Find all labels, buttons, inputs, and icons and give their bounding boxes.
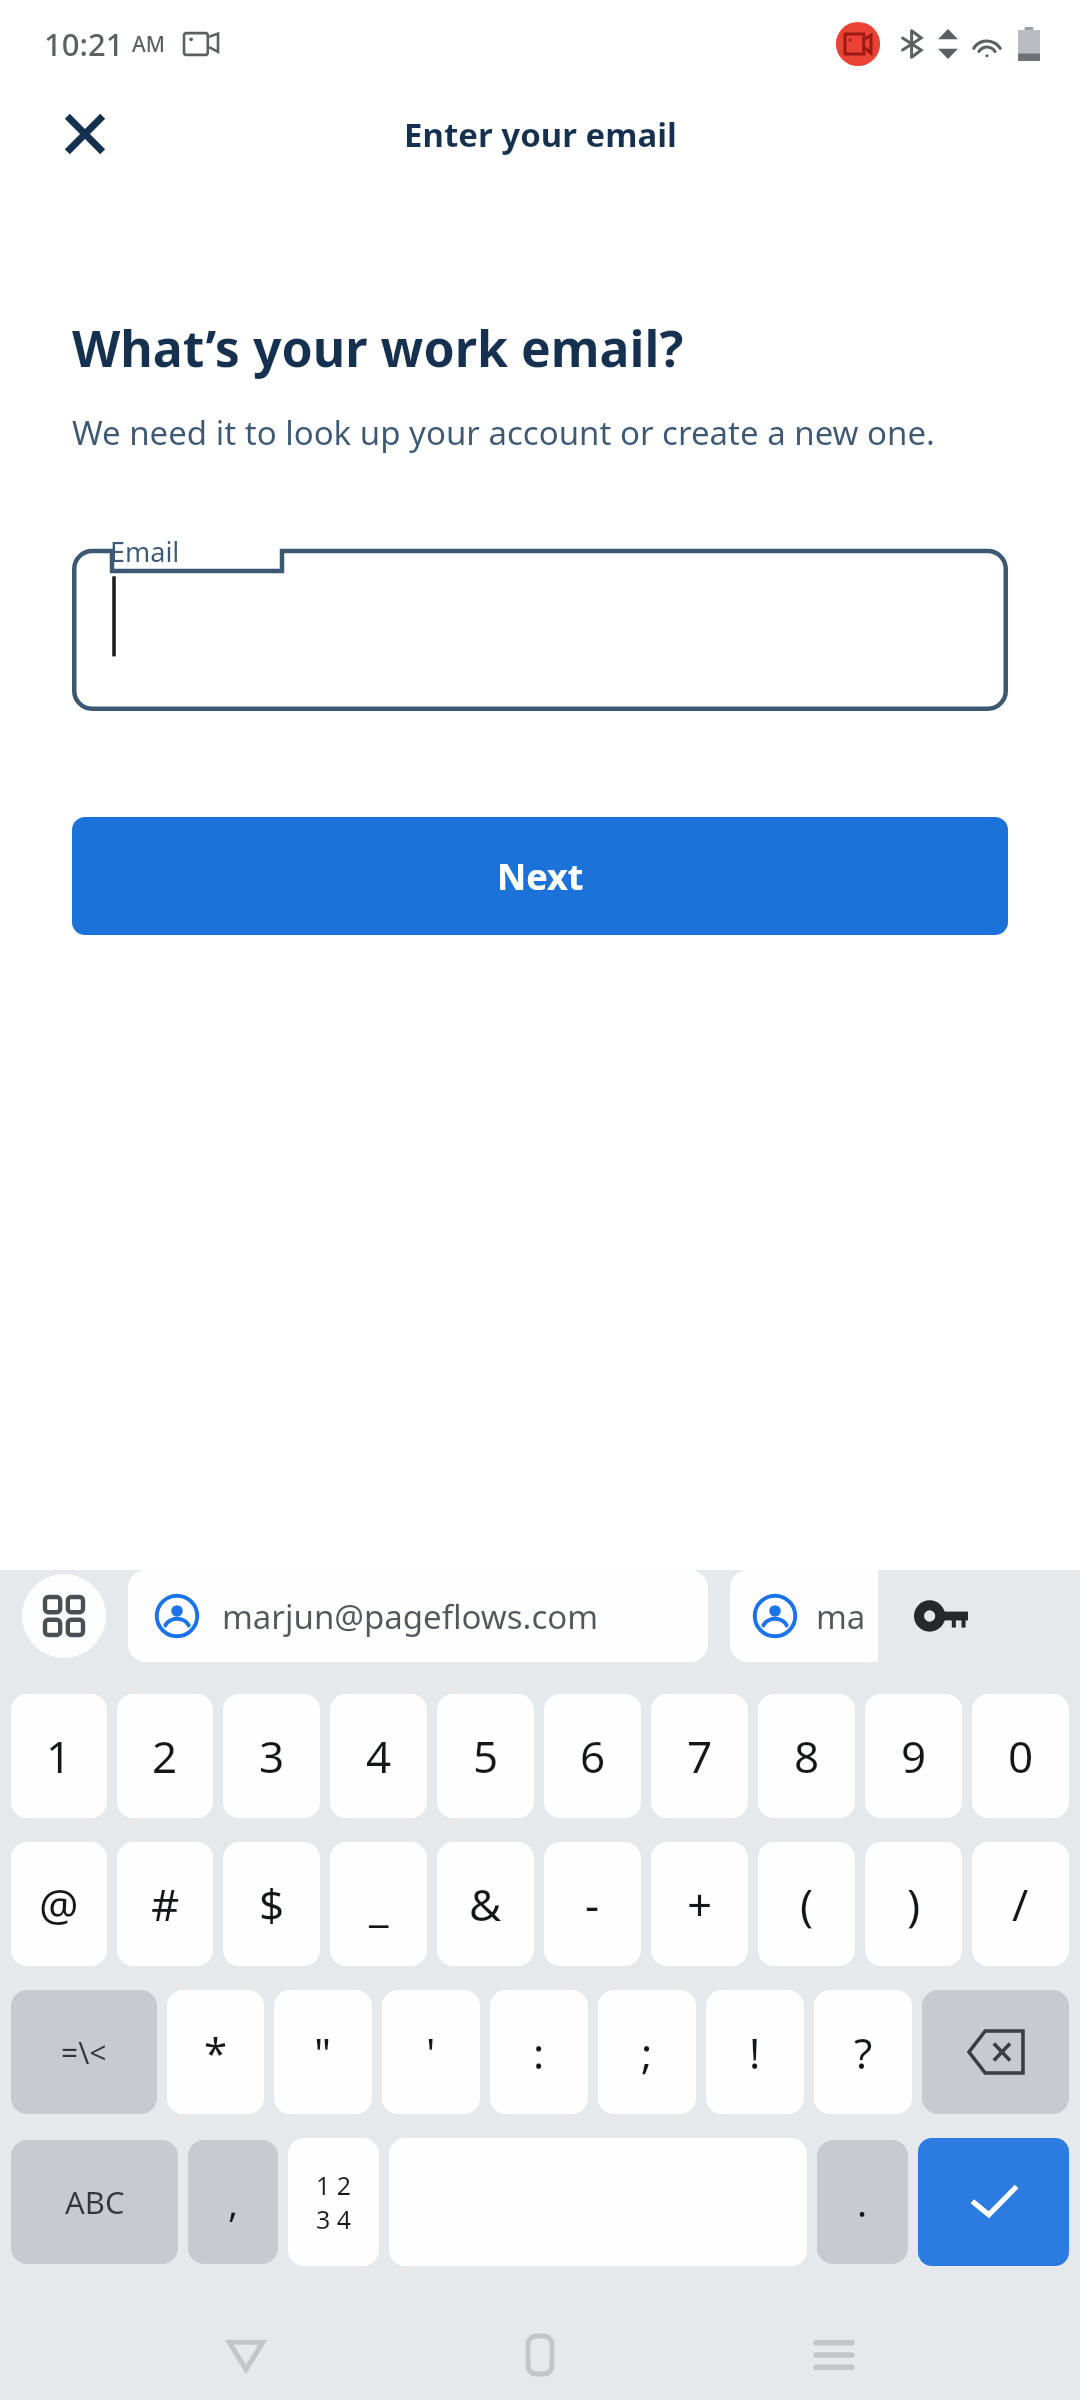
button[interactable]: @ xyxy=(11,1842,107,1966)
button[interactable]: 7 xyxy=(651,1694,748,1818)
button[interactable]: # xyxy=(117,1842,213,1966)
button[interactable]: , xyxy=(188,2140,278,2264)
button[interactable]: 6 xyxy=(544,1694,641,1818)
button[interactable]: =\< xyxy=(11,1990,157,2114)
staticText: 1 2 xyxy=(316,2168,352,2202)
staticText: , xyxy=(228,2176,239,2228)
staticText: ; xyxy=(641,2024,653,2081)
button[interactable]: ' xyxy=(382,1990,480,2114)
staticText: ma xyxy=(816,1594,866,1639)
staticText: 10:21 xyxy=(44,23,124,65)
button[interactable]: ; xyxy=(598,1990,696,2114)
button[interactable]: 0 xyxy=(972,1694,1069,1818)
button[interactable]: Numbers xyxy=(288,2138,379,2266)
staticText: 3 xyxy=(259,1726,285,1786)
button[interactable]: " xyxy=(274,1990,372,2114)
button[interactable]: + xyxy=(651,1842,748,1966)
button[interactable]: . xyxy=(817,2140,908,2264)
button[interactable]: Enter xyxy=(918,2138,1069,2266)
button[interactable]: marjun@pageflows.com xyxy=(128,1570,708,1662)
staticText: / xyxy=(1012,1874,1029,1934)
button[interactable]: ma xyxy=(730,1570,878,1662)
button[interactable]: Next xyxy=(72,817,1008,935)
button[interactable]: & xyxy=(437,1842,534,1966)
button[interactable]: 5 xyxy=(437,1694,534,1818)
staticText: . xyxy=(857,2176,868,2228)
staticText: 7 xyxy=(687,1726,713,1786)
button[interactable]: / xyxy=(972,1842,1069,1966)
staticText: AM xyxy=(132,30,166,59)
button[interactable]: Recents xyxy=(786,2310,882,2400)
staticText: _ xyxy=(369,1874,389,1934)
staticText: Email xyxy=(110,533,180,570)
button[interactable]: 2 xyxy=(117,1694,213,1818)
staticText: Next xyxy=(497,852,584,901)
button[interactable]: ) xyxy=(865,1842,962,1966)
button[interactable]: ? xyxy=(814,1990,912,2114)
staticText: We need it to look up your account or cr… xyxy=(72,410,935,455)
button[interactable]: Back xyxy=(198,2310,294,2400)
button[interactable]: _ xyxy=(330,1842,427,1966)
staticText: ! xyxy=(749,2024,761,2081)
staticText: Enter your email xyxy=(404,112,677,157)
staticText: # xyxy=(151,1874,180,1934)
button[interactable]: 9 xyxy=(865,1694,962,1818)
button[interactable]: Email xyxy=(72,529,1008,711)
button[interactable]: ( xyxy=(758,1842,855,1966)
staticText: 9 xyxy=(901,1726,927,1786)
staticText: ' xyxy=(426,2024,436,2081)
staticText: ( xyxy=(800,1874,814,1934)
button[interactable]: ! xyxy=(706,1990,804,2114)
button[interactable]: : xyxy=(490,1990,588,2114)
button[interactable]: Home xyxy=(492,2310,588,2400)
staticText: @ xyxy=(39,1874,79,1934)
staticText: 5 xyxy=(473,1726,499,1786)
staticText: ? xyxy=(854,2024,873,2081)
staticText: ) xyxy=(907,1874,921,1934)
staticText: 2 xyxy=(152,1726,178,1786)
button[interactable]: Close xyxy=(42,91,128,177)
staticText: * xyxy=(204,2024,228,2081)
staticText: 8 xyxy=(794,1726,820,1786)
staticText: + xyxy=(687,1874,713,1934)
staticText: & xyxy=(469,1874,502,1934)
button[interactable]: Keyboard options xyxy=(22,1574,106,1658)
button[interactable]: - xyxy=(544,1842,641,1966)
button[interactable]: 8 xyxy=(758,1694,855,1818)
button[interactable]: Passwords xyxy=(904,1579,978,1653)
staticText: - xyxy=(585,1874,600,1934)
staticText: 6 xyxy=(580,1726,606,1786)
button[interactable]: 3 xyxy=(223,1694,320,1818)
staticText: 4 xyxy=(366,1726,392,1786)
button[interactable]: Backspace xyxy=(922,1990,1069,2114)
button[interactable]: * xyxy=(167,1990,264,2114)
staticText: " xyxy=(314,2024,332,2081)
staticText: ABC xyxy=(65,2181,125,2223)
staticText: 1 xyxy=(46,1726,72,1786)
staticText: marjun@pageflows.com xyxy=(222,1594,599,1639)
button[interactable]: ABC xyxy=(11,2140,178,2264)
button[interactable]: 4 xyxy=(330,1694,427,1818)
staticText: 3 4 xyxy=(316,2202,352,2236)
staticText: =\< xyxy=(61,2032,107,2073)
button[interactable]: 1 xyxy=(11,1694,107,1818)
button[interactable]: $ xyxy=(223,1842,320,1966)
staticText: : xyxy=(533,2024,545,2081)
staticText: What’s your work email? xyxy=(72,314,684,382)
staticText: $ xyxy=(259,1874,285,1934)
staticText: 0 xyxy=(1008,1726,1034,1786)
